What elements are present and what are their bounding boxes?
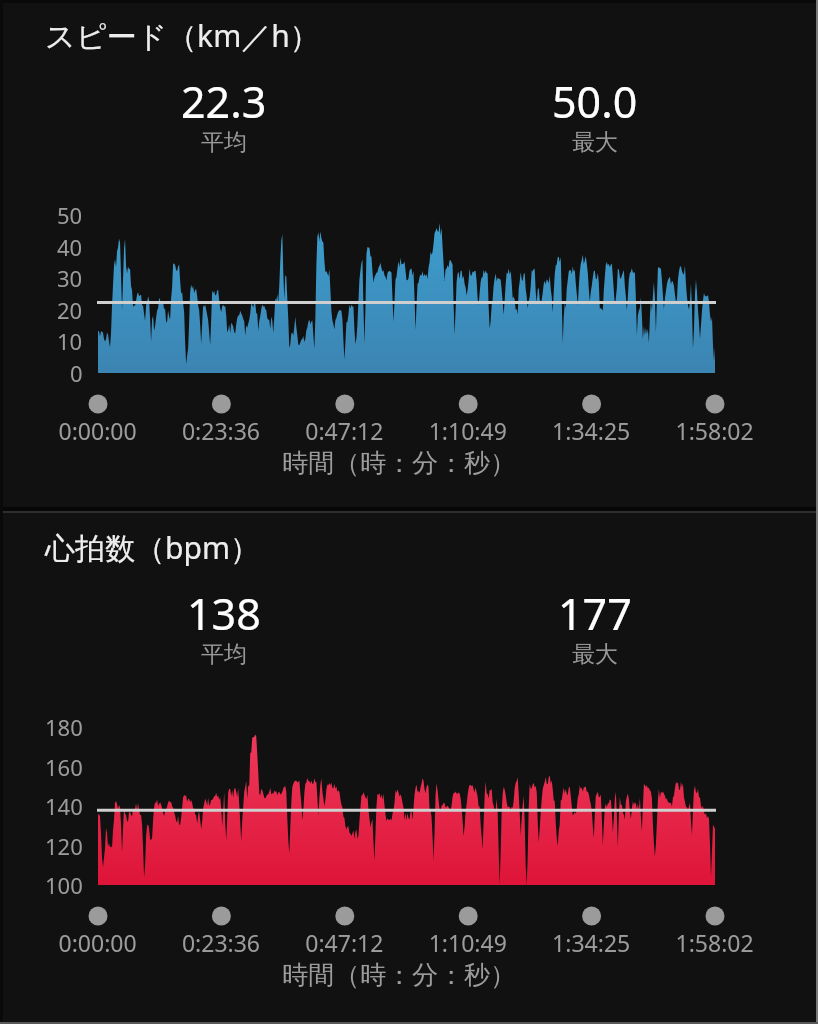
button[interactable]: スピード（km／h）グラフ <box>0 0 818 512</box>
button[interactable]: 心拍数（bpm）グラフ <box>0 512 818 1024</box>
